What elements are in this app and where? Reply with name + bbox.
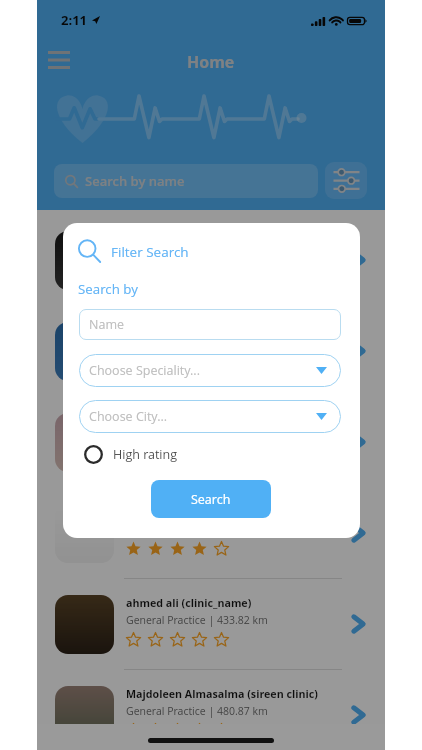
staticText: Choose City...: [89, 408, 168, 425]
button[interactable]: Dr. One: [37, 210, 385, 301]
button[interactable]: Filter: [325, 162, 367, 199]
button[interactable]: High rating: [84, 443, 178, 466]
staticText: Choose Speciality...: [89, 362, 200, 379]
staticText: Search: [191, 491, 231, 508]
button[interactable]: Name: [79, 309, 341, 340]
button[interactable]: Open doctor details: [346, 521, 370, 545]
button[interactable]: Choose Speciality...: [79, 354, 341, 387]
button[interactable]: Dr. Two: [37, 301, 385, 392]
button[interactable]: Open doctor details: [346, 430, 370, 454]
button[interactable]: Open doctor details: [346, 703, 370, 724]
button[interactable]: Dr. Three: [37, 392, 385, 483]
button[interactable]: Choose City...: [79, 400, 341, 433]
staticText: Majdoleen Almasalma (sireen clinic): [126, 687, 318, 702]
button[interactable]: Search by name: [54, 164, 318, 198]
staticText: Dr. Four: [126, 505, 169, 520]
staticText: Search by: [78, 280, 138, 298]
button[interactable]: Open doctor details: [346, 339, 370, 363]
button[interactable]: Open doctor details: [346, 612, 370, 636]
staticText: ahmed ali (clinic_name): [126, 596, 252, 611]
staticText: Home: [187, 51, 235, 73]
staticText: High rating: [113, 446, 178, 463]
staticText: General Practice | 433.82 km: [126, 613, 268, 627]
staticText: General Practice | 480.87 km: [126, 704, 268, 718]
button[interactable]: Dr. Four: [37, 483, 385, 574]
button[interactable]: Search: [151, 480, 271, 518]
button[interactable]: Open navigation menu: [40, 41, 77, 78]
staticText: General Practice | 12.00 km: [126, 249, 262, 263]
staticText: Dr. Three: [126, 414, 176, 429]
button[interactable]: Majdoleen Almasalma (sireen clinic): [37, 665, 385, 724]
staticText: 2:11: [61, 11, 87, 29]
staticText: Name: [89, 316, 125, 333]
button[interactable]: ahmed ali (clinic_name): [37, 574, 385, 665]
button[interactable]: Open doctor details: [346, 248, 370, 272]
staticText: Search by name: [85, 172, 185, 190]
staticText: Filter Search: [111, 243, 189, 261]
staticText: General Practice | 33.00 km: [126, 431, 262, 445]
